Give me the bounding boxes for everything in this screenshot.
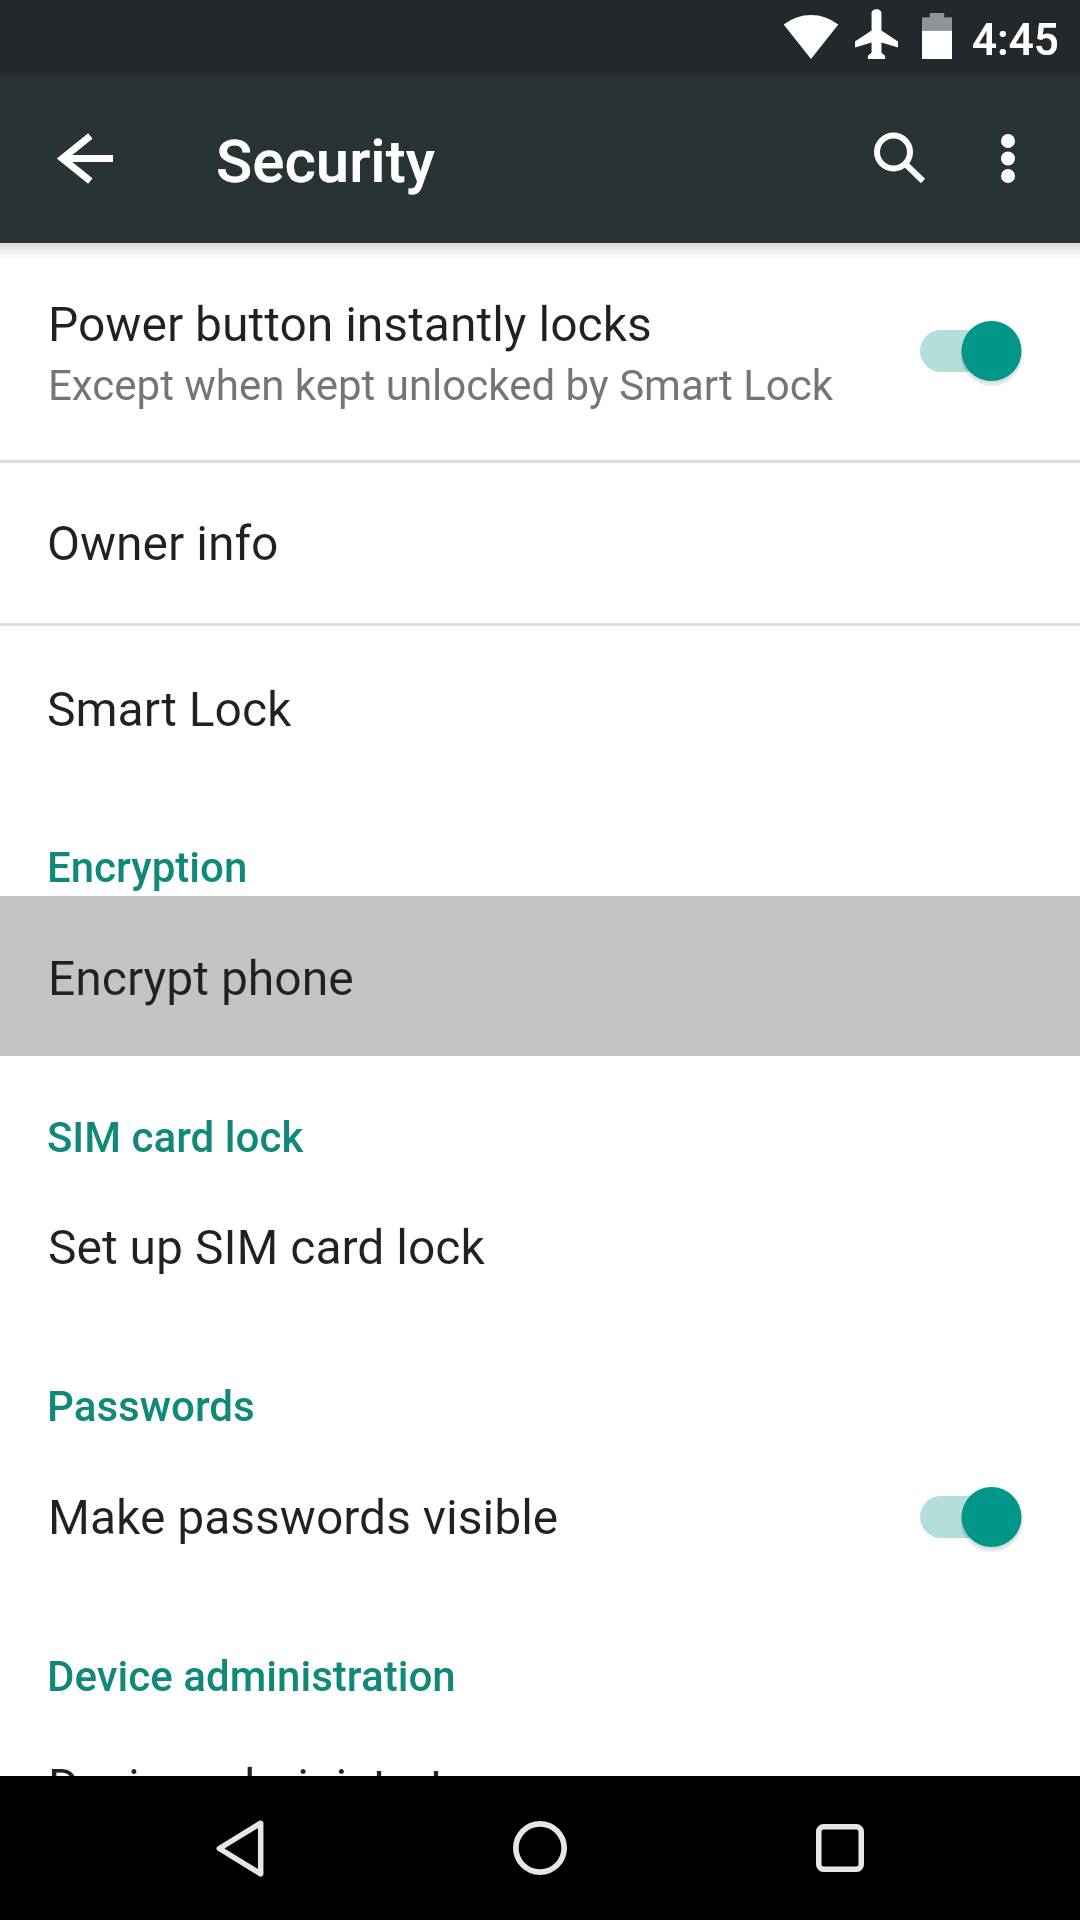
staticText: Encrypt phone — [48, 950, 354, 1006]
staticText: Make passwords visible — [48, 1489, 559, 1545]
staticText: Smart Lock — [47, 681, 292, 737]
button[interactable] — [0, 463, 1080, 623]
button[interactable]: Navigate up — [26, 73, 146, 243]
staticText: Device administrators — [48, 1758, 513, 1814]
staticText: Security — [216, 126, 435, 196]
button[interactable] — [0, 1710, 1080, 1776]
button[interactable]: Toggle — [918, 1482, 1024, 1552]
staticText: Power button instantly locks — [48, 296, 652, 352]
staticText: Except when kept unlocked by Smart Lock — [48, 361, 834, 410]
button[interactable]: Home — [468, 1776, 612, 1920]
button[interactable] — [0, 243, 1080, 461]
staticText: 4:45 — [972, 14, 1059, 66]
button[interactable]: Search — [840, 98, 960, 218]
staticText: SIM card lock — [47, 1113, 304, 1162]
button[interactable]: Back — [168, 1776, 312, 1920]
button[interactable] — [0, 1170, 1080, 1332]
button[interactable] — [0, 625, 1080, 795]
button[interactable]: Recent apps — [768, 1776, 912, 1920]
button[interactable] — [0, 1440, 1080, 1602]
staticText: Set up SIM card lock — [48, 1219, 485, 1275]
button[interactable]: Toggle — [918, 316, 1024, 386]
staticText: Owner info — [47, 515, 279, 571]
staticText: Device administration — [47, 1652, 456, 1701]
button[interactable] — [0, 896, 1080, 1056]
staticText: Passwords — [47, 1382, 255, 1431]
staticText: Encryption — [47, 843, 248, 892]
button[interactable]: More options — [960, 110, 1056, 206]
